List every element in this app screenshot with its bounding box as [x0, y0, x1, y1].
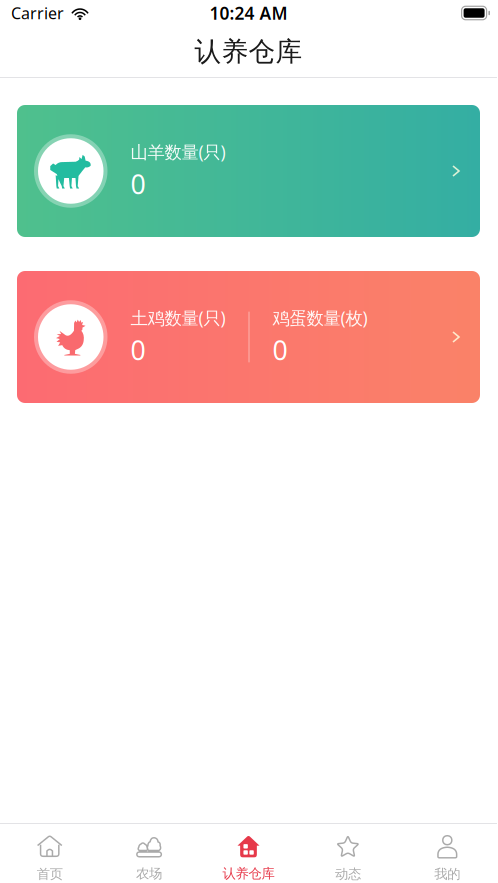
staticText: 土鸡数量(只) [130, 306, 225, 329]
button[interactable]: 土鸡数量(只) [17, 271, 480, 403]
button[interactable]: 山羊数量(只) [17, 105, 480, 237]
staticText: 0 [130, 332, 145, 368]
button[interactable]: 我的 [398, 822, 497, 883]
staticText: Carrier [11, 2, 64, 24]
button[interactable]: 认养仓库 [199, 822, 298, 883]
staticText: 0 [130, 166, 145, 202]
button[interactable]: 动态 [298, 822, 398, 883]
staticText: 首页 [37, 866, 63, 882]
button[interactable]: 首页 [0, 822, 99, 883]
staticText: 农场 [136, 865, 162, 882]
staticText: 认养仓库 [222, 865, 274, 882]
staticText: 鸡蛋数量(枚) [272, 306, 367, 329]
staticText: 0 [272, 332, 287, 368]
staticText: 我的 [434, 866, 460, 882]
staticText: 山羊数量(只) [130, 140, 225, 163]
staticText: 动态 [335, 866, 361, 882]
staticText: 10:24 AM [209, 1, 287, 24]
staticText: 认养仓库 [194, 35, 302, 68]
button[interactable]: 农场 [99, 822, 199, 883]
